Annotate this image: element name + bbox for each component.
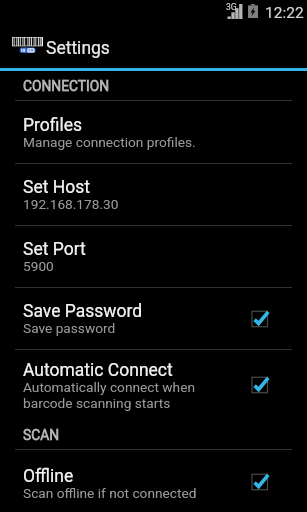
- staticText: 12:22: [265, 4, 304, 22]
- staticText: Settings: [46, 38, 110, 59]
- staticText: Save Password: [23, 301, 143, 322]
- button[interactable]: Offline: [0, 450, 307, 512]
- button[interactable]: App icon: [0, 22, 124, 68]
- staticText: Set Port: [23, 239, 86, 260]
- staticText: 192.168.178.30: [23, 196, 119, 212]
- staticText: Save password: [23, 320, 116, 336]
- button[interactable]: Set Host: [0, 164, 307, 226]
- button[interactable]: Save Password: [0, 288, 307, 350]
- button[interactable]: Set Port: [0, 226, 307, 288]
- staticText: Automatically connect when barcode scann…: [23, 379, 195, 411]
- staticText: Scan offline if not connected: [23, 485, 197, 501]
- staticText: SCAN: [23, 427, 60, 443]
- staticText: Profiles: [23, 115, 83, 136]
- staticText: Offline: [23, 466, 74, 487]
- button[interactable]: Profiles: [0, 101, 307, 164]
- button[interactable]: Automatic Connect: [0, 350, 307, 420]
- staticText: CONNECTION: [23, 78, 110, 94]
- staticText: Automatic Connect: [23, 360, 173, 381]
- staticText: 5900: [23, 258, 54, 274]
- staticText: Manage connection profiles.: [23, 134, 196, 150]
- other: App icon: [12, 37, 43, 53]
- staticText: 3G: [226, 2, 237, 12]
- staticText: Set Host: [23, 177, 90, 198]
